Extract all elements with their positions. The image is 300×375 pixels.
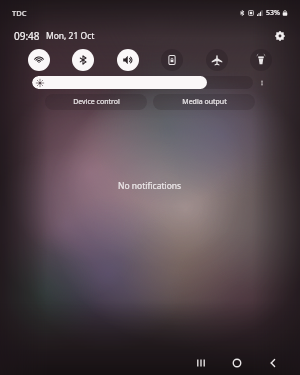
button[interactable]: Auto rotate <box>161 49 183 71</box>
button[interactable]: Sound <box>117 49 139 71</box>
button[interactable]: Wi-Fi <box>28 49 50 71</box>
button[interactable]: Flight mode <box>206 49 228 71</box>
button[interactable]: More brightness options <box>258 76 266 89</box>
button[interactable]: Back <box>260 350 286 375</box>
staticText: Media output <box>182 97 227 107</box>
button[interactable]: Device control <box>45 94 147 110</box>
button[interactable]: Home <box>224 350 250 375</box>
staticText: TDC <box>12 8 27 18</box>
staticText: Mon, 21 Oct <box>46 30 95 42</box>
button[interactable]: Flashlight <box>250 49 272 71</box>
button[interactable] <box>32 76 253 89</box>
staticText: Device control <box>73 97 120 107</box>
staticText: 53% <box>266 8 280 18</box>
button[interactable]: Media output <box>153 94 255 110</box>
staticText: 09:48 <box>14 29 40 43</box>
button[interactable]: Bluetooth <box>72 49 94 71</box>
staticText: No notifications <box>118 180 182 192</box>
button[interactable]: Settings <box>272 28 288 44</box>
button[interactable]: Recents <box>188 350 214 375</box>
